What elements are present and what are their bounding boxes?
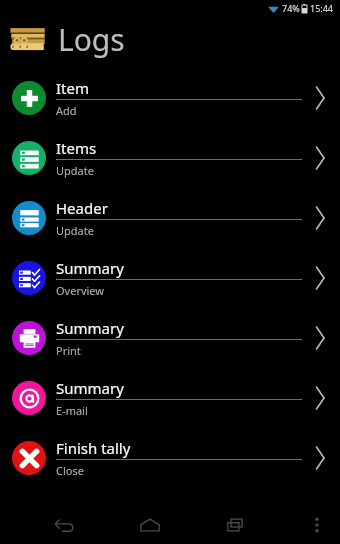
staticText: Overview — [56, 283, 104, 298]
other: Open Items — [308, 146, 332, 170]
button[interactable]: Summary — [0, 248, 340, 308]
staticText: 15:44 — [310, 2, 334, 14]
button[interactable]: Home — [128, 506, 172, 544]
staticText: Print — [56, 343, 81, 358]
button[interactable]: Header — [0, 188, 340, 248]
staticText: Close — [56, 463, 84, 478]
staticText: Add — [56, 103, 77, 118]
staticText: Summary — [56, 318, 124, 338]
other: Open Summary — [308, 386, 332, 410]
button[interactable]: Recent apps — [214, 506, 258, 544]
button[interactable]: Summary — [0, 368, 340, 428]
staticText: Update — [56, 223, 94, 238]
staticText: Items — [56, 138, 97, 158]
button[interactable]: Summary — [0, 308, 340, 368]
staticText: E-mail — [56, 403, 88, 418]
button[interactable]: Back — [42, 506, 86, 544]
other: Open Header — [308, 206, 332, 230]
staticText: 74% — [282, 2, 300, 14]
button[interactable]: Finish tally — [0, 428, 340, 488]
staticText: Summary — [56, 378, 124, 398]
staticText: Item — [56, 78, 89, 98]
button[interactable]: Items — [0, 128, 340, 188]
button[interactable]: More options — [300, 508, 334, 542]
other: Open Finish tally — [308, 446, 332, 470]
staticText: Summary — [56, 258, 124, 278]
button[interactable]: Item — [0, 68, 340, 128]
other: Open Summary — [308, 266, 332, 290]
staticText: Finish tally — [56, 438, 131, 458]
staticText: Update — [56, 163, 94, 178]
staticText: Header — [56, 198, 108, 218]
staticText: Logs — [58, 19, 125, 60]
other: Open Item — [308, 86, 332, 110]
other: Open Summary — [308, 326, 332, 350]
